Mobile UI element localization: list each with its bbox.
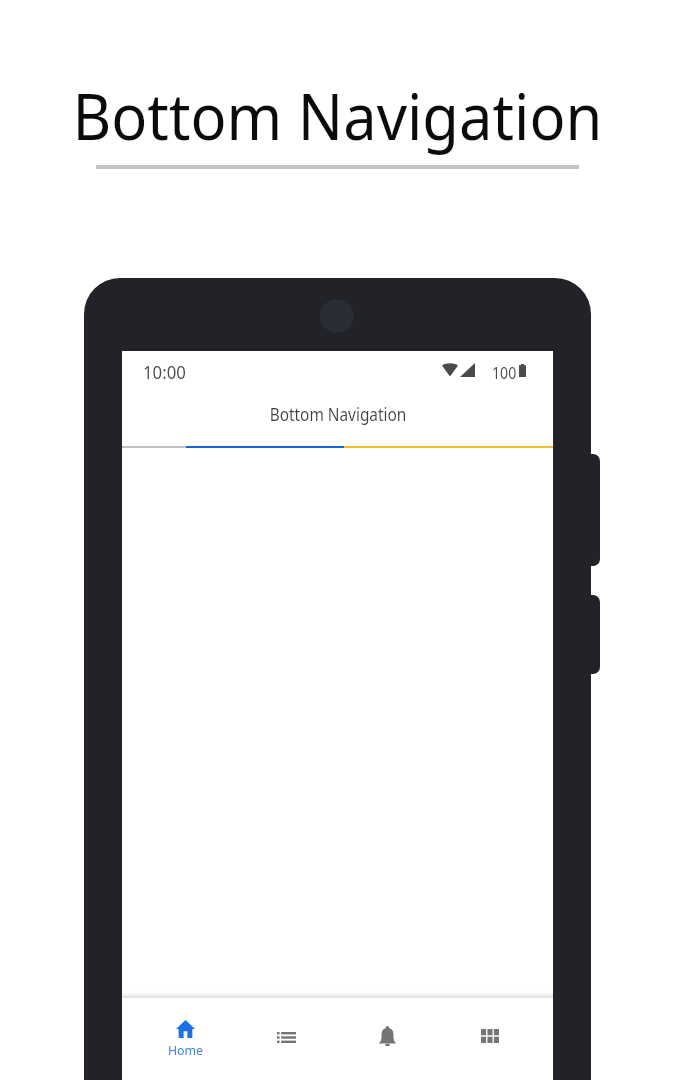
- staticText: 100: [492, 361, 517, 384]
- button[interactable]: Home: [135, 996, 236, 1080]
- staticText: Home: [168, 1041, 203, 1059]
- staticText: Bottom Navigation: [72, 71, 602, 159]
- button[interactable]: List: [236, 996, 337, 1080]
- button[interactable]: Apps: [439, 996, 540, 1080]
- staticText: Bottom Navigation: [270, 402, 406, 427]
- staticText: 10:00: [143, 360, 187, 385]
- button[interactable]: Notifications: [337, 996, 438, 1080]
